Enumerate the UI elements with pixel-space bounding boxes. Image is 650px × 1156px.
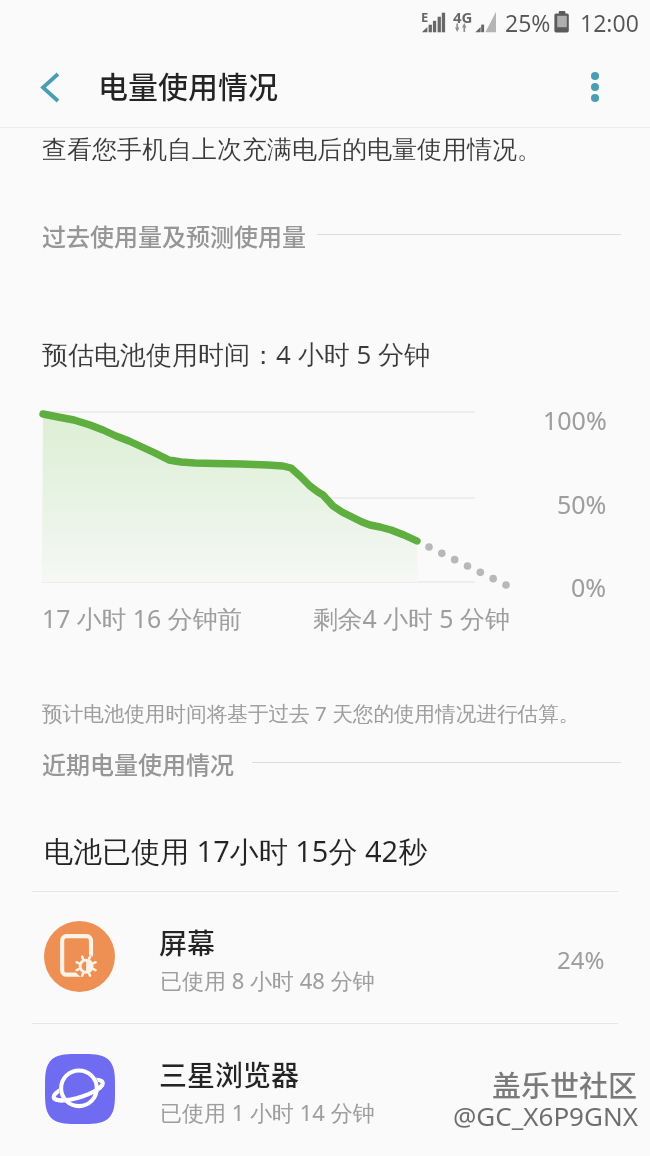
staticText: 0% — [571, 570, 607, 604]
staticText: 已使用 8 小时 48 分钟 — [160, 965, 375, 995]
staticText: 三星浏览器 — [159, 1054, 300, 1095]
staticText: 预估电池使用时间：4 小时 5 分钟 — [42, 336, 431, 372]
staticText: 电池已使用 17小时 15分 42秒 — [44, 831, 428, 871]
staticText: 剩余4 小时 5 分钟 — [313, 601, 510, 635]
staticText: 25% — [505, 7, 551, 38]
staticText: 近期电量使用情况 — [42, 746, 234, 781]
staticText: 4G — [453, 7, 473, 27]
staticText: 盖乐世社区 — [492, 1063, 638, 1105]
button[interactable]: 屏幕 — [0, 891, 650, 1023]
staticText: 24% — [557, 943, 605, 976]
staticText: 100% — [543, 403, 607, 437]
staticText: 屏幕 — [159, 922, 216, 963]
staticText: 50% — [557, 487, 607, 521]
staticText: E — [421, 8, 429, 26]
button[interactable]: 三星浏览器 — [0, 1023, 650, 1155]
staticText: 17 小时 16 分钟前 — [42, 601, 243, 635]
button[interactable]: More options — [566, 58, 624, 116]
staticText: 过去使用量及预测使用量 — [42, 218, 306, 253]
staticText: 已使用 1 小时 14 分钟 — [160, 1097, 375, 1127]
staticText: 预计电池使用时间将基于过去 7 天您的使用情况进行估算。 — [42, 699, 580, 727]
staticText: 12:00 — [580, 7, 639, 38]
staticText: 查看您手机自上次充满电后的电量使用情况。 — [42, 134, 542, 165]
staticText: @GC_X6P9GNX — [453, 1098, 638, 1133]
staticText: 电量使用情况 — [98, 63, 278, 106]
button[interactable]: Back — [21, 58, 79, 116]
